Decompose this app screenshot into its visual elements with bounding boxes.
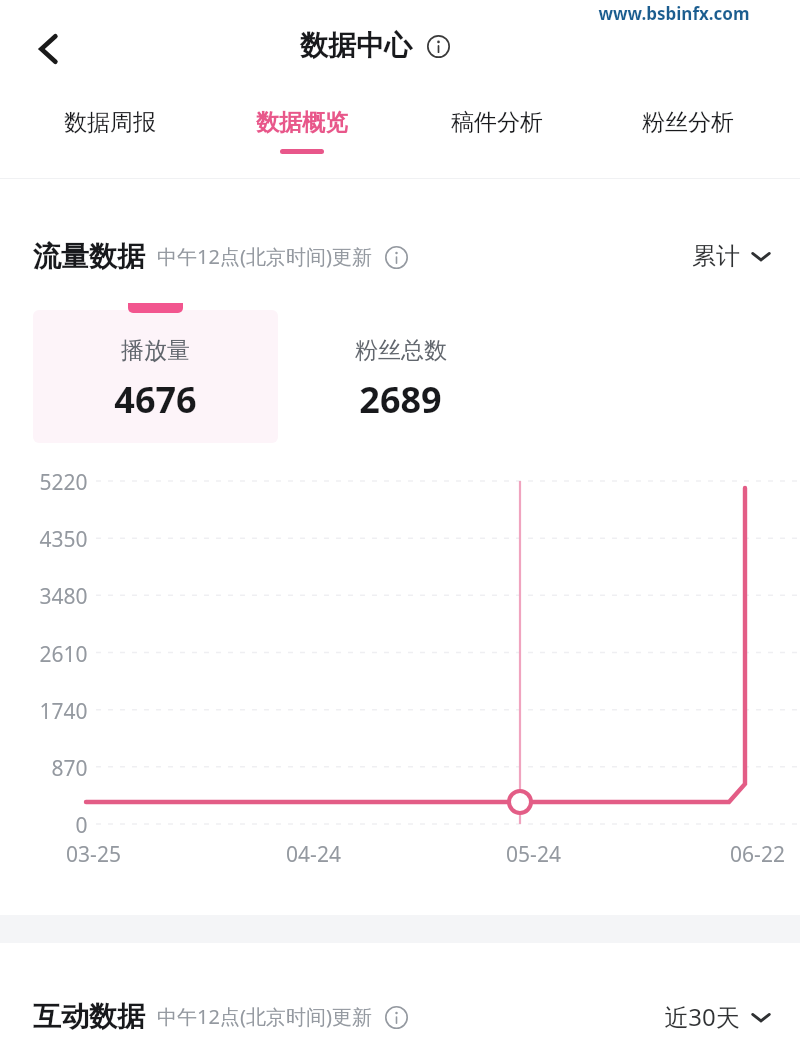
staticText: 累计 — [692, 241, 740, 271]
button[interactable] — [33, 310, 278, 443]
staticText: 2610 — [39, 640, 88, 669]
button[interactable]: 累计 — [686, 233, 778, 279]
staticText: 数据周报 — [64, 108, 156, 137]
staticText: 4350 — [39, 525, 88, 554]
button[interactable]: Info — [382, 1003, 410, 1031]
staticText: 粉丝分析 — [642, 108, 734, 137]
staticText: 04-24 — [286, 840, 341, 869]
staticText: 粉丝总数 — [355, 336, 447, 365]
button[interactable]: Info — [382, 243, 410, 271]
button[interactable]: Info — [422, 30, 454, 62]
button[interactable]: 数据概览 — [214, 100, 390, 172]
staticText: www.bsbinfx.com — [598, 2, 750, 25]
staticText: 播放量 — [121, 336, 190, 365]
staticText: 1740 — [39, 697, 88, 726]
staticText: 3480 — [39, 582, 88, 611]
staticText: 稿件分析 — [451, 108, 543, 137]
button[interactable]: 粉丝分析 — [600, 100, 776, 172]
staticText: 数据概览 — [256, 108, 348, 137]
staticText: 数据中心 — [300, 28, 412, 63]
staticText: 近30天 — [664, 1000, 740, 1033]
button[interactable]: 稿件分析 — [409, 100, 585, 172]
button[interactable]: 数据周报 — [22, 100, 198, 172]
staticText: 05-24 — [506, 840, 561, 869]
staticText: 06-22 — [730, 840, 785, 869]
staticText: 互动数据 — [33, 999, 145, 1034]
staticText: 0 — [75, 811, 88, 840]
staticText: 03-25 — [66, 840, 121, 869]
staticText: 中午12点(北京时间)更新 — [157, 243, 372, 270]
staticText: 中午12点(北京时间)更新 — [157, 1003, 372, 1030]
staticText: 4676 — [114, 375, 197, 424]
staticText: 流量数据 — [33, 239, 145, 274]
staticText: 2689 — [359, 375, 442, 424]
staticText: 5220 — [39, 468, 88, 497]
button[interactable]: 粉丝总数 — [278, 310, 523, 424]
button[interactable]: Back — [18, 18, 80, 80]
staticText: 870 — [51, 754, 88, 783]
button[interactable]: 近30天 — [658, 992, 778, 1041]
